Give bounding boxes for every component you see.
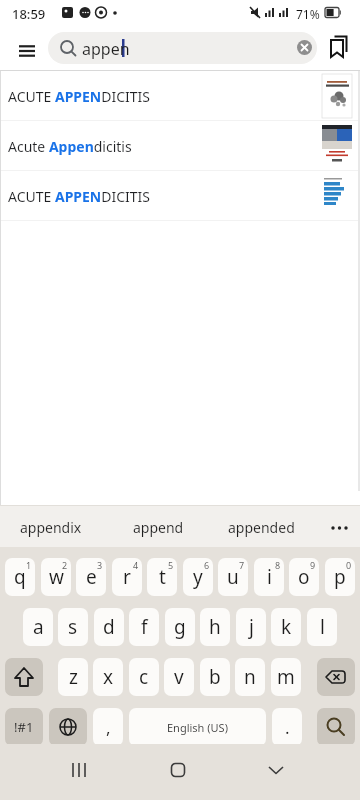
staticText: o bbox=[298, 564, 310, 590]
button[interactable]: c bbox=[129, 658, 159, 696]
button[interactable]: u bbox=[218, 558, 248, 596]
button[interactable] bbox=[326, 35, 352, 61]
button[interactable]: p bbox=[325, 558, 355, 596]
button[interactable]: m bbox=[271, 658, 301, 696]
staticText: 1 bbox=[26, 559, 32, 571]
button[interactable]: w bbox=[41, 558, 71, 596]
staticText: ACUTE APPENDICITIS bbox=[8, 87, 151, 106]
button[interactable]: n bbox=[235, 658, 265, 696]
staticText: !#1 bbox=[14, 718, 34, 736]
staticText: s bbox=[68, 614, 78, 640]
staticText: appendix bbox=[20, 518, 82, 537]
button[interactable]: r bbox=[112, 558, 142, 596]
button[interactable]: k bbox=[271, 608, 301, 646]
button[interactable]: d bbox=[94, 608, 124, 646]
staticText: c bbox=[139, 664, 149, 690]
button[interactable] bbox=[215, 505, 315, 547]
button[interactable]: appen bbox=[48, 32, 317, 64]
staticText: . bbox=[285, 716, 290, 739]
staticText: b bbox=[209, 664, 221, 690]
staticText: l bbox=[320, 614, 325, 640]
button[interactable] bbox=[62, 754, 96, 788]
button[interactable]: b bbox=[200, 658, 230, 696]
staticText: 4 bbox=[133, 559, 139, 571]
staticText: 71% bbox=[296, 6, 320, 22]
button[interactable] bbox=[317, 708, 355, 746]
button[interactable]: i bbox=[254, 558, 284, 596]
staticText: ACUTE APPENDICITIS bbox=[8, 187, 151, 206]
staticText: g bbox=[174, 614, 186, 640]
staticText: 2 bbox=[62, 559, 68, 571]
staticText: append bbox=[133, 518, 184, 537]
staticText: z bbox=[69, 664, 78, 690]
button[interactable]: t bbox=[147, 558, 177, 596]
button[interactable]: !#1 bbox=[5, 708, 43, 746]
staticText: 7 bbox=[239, 559, 245, 571]
staticText: 5 bbox=[168, 559, 174, 571]
button[interactable]: e bbox=[76, 558, 106, 596]
staticText: k bbox=[281, 614, 292, 640]
button[interactable] bbox=[12, 39, 42, 57]
button[interactable] bbox=[317, 658, 355, 696]
staticText: 18:59 bbox=[12, 5, 46, 23]
button[interactable] bbox=[8, 505, 108, 547]
button[interactable]: x bbox=[93, 658, 123, 696]
staticText: w bbox=[49, 564, 64, 590]
staticText: p bbox=[334, 564, 346, 590]
staticText: Acute Appendicitis bbox=[8, 137, 132, 156]
button[interactable] bbox=[259, 754, 293, 788]
staticText: v bbox=[174, 664, 184, 690]
button[interactable]: o bbox=[289, 558, 319, 596]
staticText: e bbox=[86, 564, 97, 590]
staticText: j bbox=[249, 614, 254, 640]
staticText: 8 bbox=[275, 559, 281, 571]
button[interactable] bbox=[161, 754, 195, 788]
staticText: 9 bbox=[310, 559, 316, 571]
staticText: x bbox=[103, 664, 114, 690]
button[interactable]: . bbox=[272, 708, 302, 746]
button[interactable]: s bbox=[58, 608, 88, 646]
button[interactable]: h bbox=[200, 608, 230, 646]
staticText: q bbox=[14, 564, 26, 590]
button[interactable]: f bbox=[129, 608, 159, 646]
staticText: d bbox=[103, 614, 115, 640]
button[interactable] bbox=[49, 708, 87, 746]
button[interactable]: z bbox=[58, 658, 88, 696]
staticText: m bbox=[277, 664, 295, 690]
button[interactable]: Acute Appendicitis bbox=[0, 121, 360, 171]
staticText: appen bbox=[82, 38, 130, 60]
button[interactable] bbox=[5, 658, 43, 696]
button[interactable]: j bbox=[236, 608, 266, 646]
staticText: h bbox=[209, 614, 221, 640]
staticText: f bbox=[141, 614, 148, 640]
button[interactable]: q bbox=[5, 558, 35, 596]
staticText: 0 bbox=[346, 559, 352, 571]
button[interactable]: y bbox=[183, 558, 213, 596]
staticText: 3 bbox=[97, 559, 103, 571]
staticText: a bbox=[33, 614, 44, 640]
staticText: n bbox=[244, 664, 256, 690]
staticText: English (US) bbox=[167, 720, 228, 735]
staticText: appended bbox=[228, 518, 295, 537]
button[interactable]: , bbox=[93, 708, 123, 746]
staticText: i bbox=[267, 564, 272, 590]
staticText: u bbox=[227, 564, 239, 590]
button[interactable] bbox=[120, 505, 200, 547]
button[interactable]: English (US) bbox=[129, 708, 266, 746]
button[interactable]: ACUTE APPENDICITIS bbox=[0, 171, 360, 221]
staticText: , bbox=[106, 716, 111, 739]
button[interactable]: a bbox=[23, 608, 53, 646]
button[interactable] bbox=[297, 40, 312, 55]
button[interactable]: g bbox=[165, 608, 195, 646]
staticText: y bbox=[193, 564, 203, 590]
staticText: 6 bbox=[204, 559, 210, 571]
button[interactable]: ACUTE APPENDICITIS bbox=[0, 71, 360, 121]
button[interactable]: l bbox=[307, 608, 337, 646]
staticText: t bbox=[159, 564, 166, 590]
staticText: r bbox=[123, 564, 131, 590]
button[interactable]: v bbox=[164, 658, 194, 696]
